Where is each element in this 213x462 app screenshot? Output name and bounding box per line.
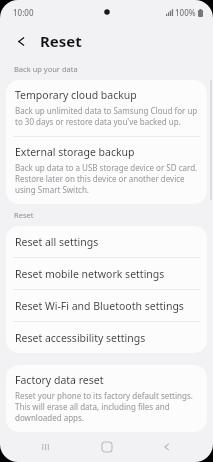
button[interactable]: Back: [152, 432, 182, 462]
button[interactable]: External storage backup: [6, 137, 207, 204]
staticText: Reset all settings: [15, 235, 99, 249]
button[interactable]: Reset mobile network settings: [6, 258, 207, 289]
button[interactable]: Reset all settings: [6, 226, 207, 257]
staticText: Temporary cloud backup: [15, 88, 137, 102]
staticText: 100%: [175, 7, 196, 18]
button[interactable]: Reset accessibility settings: [6, 322, 207, 353]
staticText: External storage backup: [15, 145, 135, 159]
staticText: Reset mobile network settings: [15, 267, 165, 281]
staticText: Reset: [40, 31, 82, 51]
button[interactable]: Recents: [31, 432, 61, 462]
staticText: Reset: [14, 210, 34, 220]
staticText: Back up unlimited data to Samsung Cloud …: [15, 105, 198, 127]
staticText: Factory data reset: [15, 373, 104, 387]
button[interactable]: Temporary cloud backup: [6, 80, 207, 136]
button[interactable]: Factory data reset: [6, 365, 207, 432]
staticText: Back up data to a USB storage device or …: [15, 162, 198, 195]
button[interactable]: Back: [10, 30, 32, 52]
staticText: Reset your phone to its factory default …: [15, 390, 198, 423]
staticText: 10:00: [13, 7, 34, 18]
staticText: Back up your data: [14, 64, 78, 74]
staticText: Reset accessibility settings: [15, 331, 146, 345]
button[interactable]: Reset Wi-Fi and Bluetooth settings: [6, 290, 207, 321]
button[interactable]: Home: [92, 432, 122, 462]
staticText: Reset Wi-Fi and Bluetooth settings: [15, 299, 184, 313]
